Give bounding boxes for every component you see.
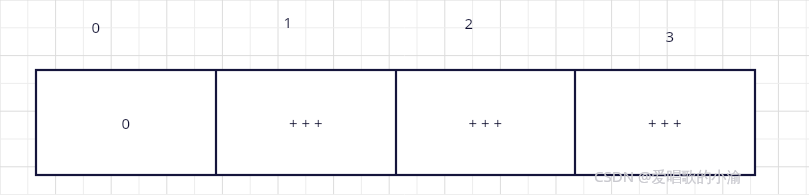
button[interactable]: Array diagram with four cells bbox=[0, 0, 809, 195]
